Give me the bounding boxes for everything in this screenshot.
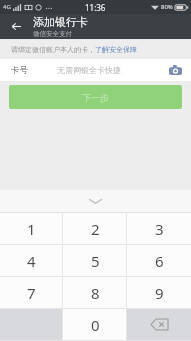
button[interactable]: 6 <box>127 245 191 276</box>
button[interactable]: 7 <box>0 277 63 308</box>
button[interactable]: Hide keyboard <box>0 190 191 212</box>
staticText: 卡号 <box>11 65 28 76</box>
staticText: 2 <box>91 219 100 239</box>
staticText: 11:36 <box>85 2 106 13</box>
button[interactable]: 0 <box>63 309 127 340</box>
button[interactable]: 卡号 <box>0 59 191 81</box>
staticText: 请绑定微信账户本人的卡， <box>11 45 95 54</box>
staticText: 80% <box>161 3 173 11</box>
button[interactable]: 8 <box>63 277 127 308</box>
staticText: 了解安全保障 <box>95 45 137 54</box>
button[interactable]: 4 <box>0 245 63 276</box>
staticText: 4 <box>27 251 36 271</box>
button[interactable]: 下一步 <box>9 85 182 109</box>
staticText: 9 <box>155 283 164 303</box>
button[interactable]: 3 <box>127 213 191 244</box>
staticText: 添加银行卡 <box>33 15 88 29</box>
button[interactable]: Back <box>0 14 32 39</box>
button[interactable]: 请绑定微信账户本人的卡， <box>11 45 137 54</box>
staticText: 微信安全支付 <box>33 30 72 38</box>
staticText: 1 <box>27 219 36 239</box>
button[interactable]: 9 <box>127 277 191 308</box>
staticText: 下一步 <box>82 92 109 103</box>
staticText: 8 <box>91 283 100 303</box>
button[interactable]: 1 <box>0 213 63 244</box>
button[interactable]: 5 <box>63 245 127 276</box>
staticText: 6 <box>155 251 164 271</box>
staticText: 0 <box>91 315 100 335</box>
button[interactable]: Scan card with camera <box>165 60 185 80</box>
button[interactable]: 2 <box>63 213 127 244</box>
staticText: 7 <box>27 283 36 303</box>
staticText: 5 <box>91 251 100 271</box>
staticText: 3 <box>155 219 164 239</box>
staticText: 无需网银全卡快捷 <box>57 65 121 75</box>
button[interactable]: Delete <box>127 309 191 340</box>
staticText: 4G <box>3 3 11 11</box>
